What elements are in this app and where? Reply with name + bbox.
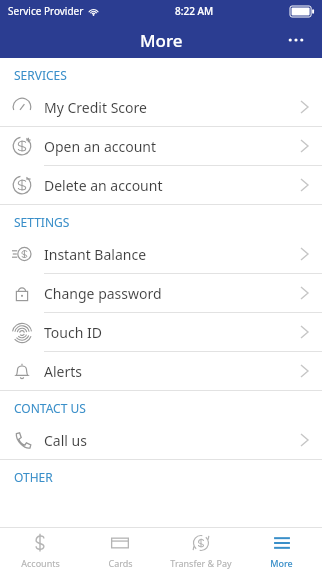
staticText: Transfer & Pay xyxy=(170,557,232,569)
staticText: Accounts xyxy=(21,557,60,569)
button[interactable]: Accounts xyxy=(0,528,80,572)
button[interactable]: Alerts xyxy=(0,352,322,391)
button[interactable]: Transfer & Pay xyxy=(160,528,241,572)
button[interactable]: Cards xyxy=(80,528,160,572)
button[interactable]: Open an account xyxy=(0,127,322,166)
staticText: Delete an account xyxy=(44,176,163,195)
staticText: SETTINGS xyxy=(14,214,70,230)
button[interactable]: Touch ID xyxy=(0,313,322,352)
staticText: SERVICES xyxy=(14,67,67,83)
button[interactable]: Delete an account xyxy=(0,166,322,205)
staticText: Change password xyxy=(44,284,162,303)
button[interactable]: More xyxy=(241,528,322,572)
staticText: More xyxy=(270,557,293,569)
staticText: Instant Balance xyxy=(44,245,147,264)
button[interactable]: Change password xyxy=(0,274,322,313)
staticText: CONTACT US xyxy=(14,400,86,416)
button[interactable]: More options xyxy=(278,22,314,58)
button[interactable]: Call us xyxy=(0,421,322,460)
staticText: Cards xyxy=(108,557,133,569)
staticText: Service Provider xyxy=(8,4,84,18)
staticText: Touch ID xyxy=(44,323,102,342)
staticText: Open an account xyxy=(44,137,156,156)
staticText: My Credit Score xyxy=(44,98,147,117)
staticText: 8:22 AM xyxy=(175,4,214,18)
staticText: Call us xyxy=(44,431,87,450)
button[interactable]: Instant Balance xyxy=(0,235,322,274)
staticText: OTHER xyxy=(14,469,53,485)
button[interactable]: My Credit Score xyxy=(0,88,322,127)
staticText: Alerts xyxy=(44,362,82,381)
staticText: More xyxy=(140,29,183,52)
